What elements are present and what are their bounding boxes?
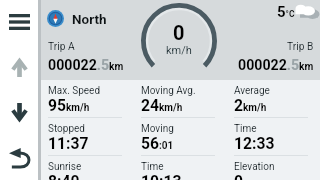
staticText: Moving — [141, 123, 174, 135]
staticText: Trip B — [287, 41, 314, 53]
staticText: Time — [141, 161, 164, 173]
staticText: Stopped — [48, 123, 85, 135]
button[interactable]: Back — [2, 140, 37, 174]
staticText: 2km/h — [234, 96, 267, 114]
staticText: 000022.5km — [48, 57, 124, 74]
button[interactable]: Time — [227, 118, 320, 156]
staticText: Sunrise — [48, 161, 82, 173]
button[interactable]: Weather — [277, 3, 320, 24]
button[interactable]: North — [47, 10, 107, 27]
button[interactable]: Sunrise — [41, 156, 134, 180]
button[interactable]: Time — [134, 156, 227, 180]
staticText: 11:37 — [48, 134, 89, 152]
button[interactable]: Stopped — [41, 118, 134, 156]
staticText: 8:40 — [48, 172, 80, 180]
staticText: North — [72, 11, 107, 27]
staticText: 5°C — [277, 3, 295, 21]
button[interactable]: Moving — [134, 118, 227, 156]
staticText: Trip A — [48, 41, 75, 53]
staticText: 12:33 — [234, 134, 275, 152]
staticText: 10:13 — [141, 172, 182, 180]
staticText: 56:01 — [141, 134, 174, 152]
staticText: 0 — [173, 21, 185, 44]
button[interactable]: Next page — [2, 95, 37, 129]
staticText: Elevation — [234, 161, 275, 173]
staticText: 24km/h — [141, 96, 183, 114]
staticText: 95km/h — [48, 96, 90, 114]
staticText: Max. Speed — [48, 85, 101, 97]
staticText: 0m — [234, 172, 252, 180]
button[interactable]: Elevation — [227, 156, 320, 180]
button[interactable]: Menu — [2, 6, 36, 38]
staticText: 000022.5km — [238, 57, 314, 74]
staticText: km/h — [166, 44, 192, 57]
staticText: Average — [234, 85, 270, 97]
button[interactable]: Max. Speed — [41, 80, 134, 118]
button[interactable]: Average — [227, 80, 320, 118]
button[interactable]: Previous page — [2, 50, 37, 84]
button[interactable]: Moving Avg. — [134, 80, 227, 118]
staticText: Moving Avg. — [141, 85, 196, 97]
staticText: Time — [234, 123, 257, 135]
